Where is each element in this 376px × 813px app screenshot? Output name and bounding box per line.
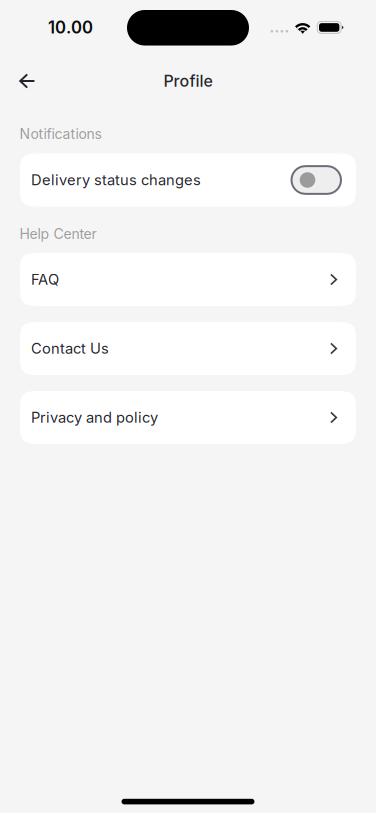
- staticText: Notifications: [19, 125, 101, 142]
- staticText: Contact Us: [31, 340, 109, 357]
- staticText: FAQ: [31, 271, 59, 288]
- button[interactable]: Back: [7, 61, 47, 101]
- staticText: Help Center: [19, 225, 96, 242]
- button[interactable]: Contact Us: [20, 322, 356, 375]
- staticText: 10.00: [48, 17, 93, 38]
- staticText: Delivery status changes: [31, 171, 201, 189]
- staticText: Privacy and policy: [31, 409, 158, 426]
- button[interactable]: FAQ: [20, 253, 356, 306]
- button[interactable]: Privacy and policy: [20, 391, 356, 444]
- staticText: Profile: [163, 71, 212, 91]
- button[interactable]: Delivery status changes: [20, 153, 356, 206]
